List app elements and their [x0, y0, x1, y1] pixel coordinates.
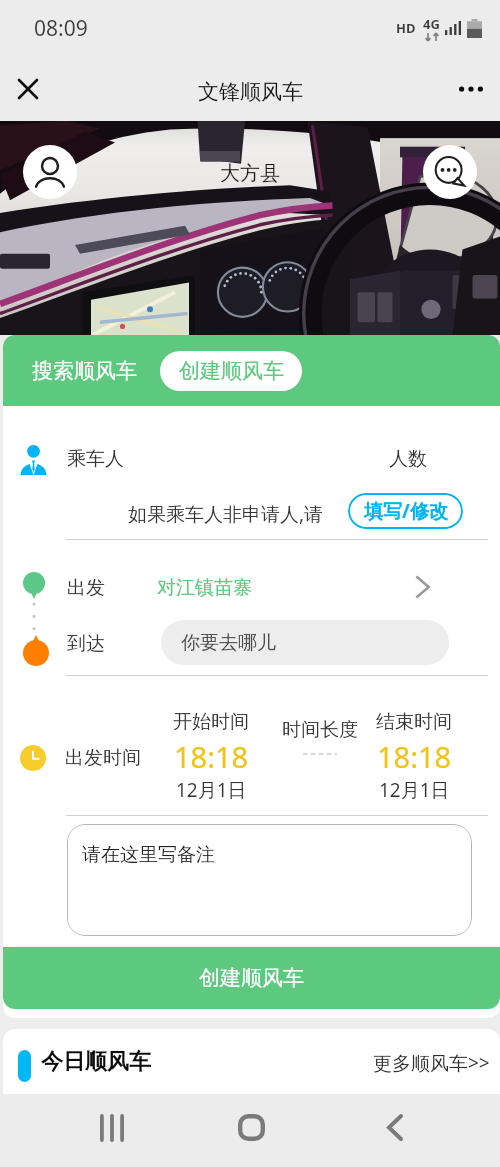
button[interactable]: 你要去哪儿 [161, 620, 449, 665]
staticText: 12月1日 [176, 777, 247, 803]
staticText: 18:18 [174, 737, 249, 776]
staticText: 乘车人 [67, 447, 124, 471]
button[interactable]: 创建顺风车 [3, 947, 500, 1009]
staticText: 创建顺风车 [179, 358, 284, 384]
staticText: 文锋顺风车 [198, 79, 303, 105]
button[interactable]: 创建顺风车 [160, 351, 302, 391]
button[interactable]: 填写/修改 [348, 493, 463, 529]
staticText: 时间长度 [282, 718, 358, 742]
staticText: 填写/修改 [364, 498, 448, 524]
staticText: 更多顺风车>> [373, 1050, 490, 1076]
staticText: 08:09 [34, 14, 88, 43]
button[interactable]: Recent apps [62, 1094, 162, 1167]
staticText: 你要去哪儿 [181, 631, 276, 655]
staticText: 对江镇苗寨 [157, 576, 252, 600]
staticText: 到达 [67, 632, 105, 656]
staticText: 出发时间 [65, 746, 141, 770]
staticText: 请在这里写备注 [82, 843, 215, 867]
staticText: 今日顺风车 [41, 1048, 151, 1076]
staticText: 结束时间 [376, 710, 452, 734]
staticText: 创建顺风车 [199, 965, 304, 991]
staticText: 12月1日 [379, 777, 450, 803]
staticText: 4G [423, 15, 440, 33]
staticText: 如果乘车人非申请人,请 [128, 501, 324, 527]
staticText: 人数 [389, 447, 427, 471]
button[interactable]: Profile [23, 145, 77, 199]
button[interactable]: More options [442, 60, 500, 118]
staticText: 18:18 [377, 737, 452, 776]
button[interactable]: Messages [423, 145, 477, 199]
button[interactable]: 搜索顺风车 [19, 351, 149, 391]
staticText: HD [396, 19, 416, 37]
button[interactable]: 今日顺风车 [3, 1029, 500, 1094]
button[interactable]: Back [345, 1094, 445, 1167]
button[interactable]: Close [0, 61, 56, 117]
staticText: 搜索顺风车 [32, 358, 137, 384]
staticText: 出发 [67, 576, 105, 600]
staticText: 开始时间 [173, 710, 249, 734]
button[interactable]: 请在这里写备注 [67, 824, 472, 936]
staticText: 大方县 [220, 161, 280, 186]
button[interactable] [3, 556, 500, 612]
button[interactable]: Home [201, 1094, 301, 1167]
